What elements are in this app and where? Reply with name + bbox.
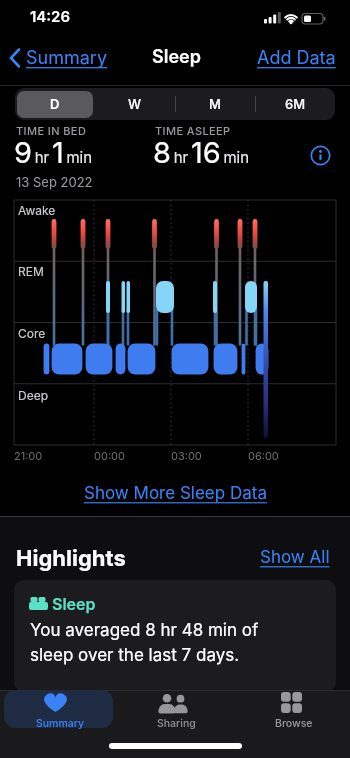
staticText: 6M (285, 96, 306, 112)
staticText: You averaged 8 hr 48 min of (30, 620, 259, 641)
staticText: Sharing (157, 717, 196, 730)
staticText: Highlights (16, 545, 126, 572)
button[interactable]: Summary (6, 44, 118, 74)
staticText: 03:00 (171, 449, 202, 462)
staticText: REM (18, 264, 44, 279)
staticText: TIME ASLEEP (155, 124, 231, 137)
staticText: 9 hr 1 min (14, 135, 93, 170)
button[interactable]: Sharing (120, 690, 230, 734)
staticText: 8 hr 16 min (153, 135, 250, 170)
button[interactable] (309, 144, 332, 167)
button[interactable]: Browse (236, 690, 346, 734)
staticText: Add Data (257, 47, 336, 69)
staticText: Summary (36, 717, 84, 730)
staticText: Core (18, 326, 46, 341)
staticText: Deep (18, 388, 48, 403)
staticText: 06:00 (248, 449, 279, 462)
staticText: 21:00 (14, 449, 43, 462)
staticText: 00:00 (94, 449, 125, 462)
staticText: W (128, 96, 142, 112)
staticText: D (50, 96, 60, 112)
button[interactable]: Add Data (257, 44, 343, 74)
staticText: 14:26 (30, 7, 71, 25)
staticText: sleep over the last 7 days. (30, 645, 240, 666)
button[interactable]: Show All (260, 547, 330, 568)
button[interactable]: Summary (4, 690, 113, 734)
staticText: Summary (26, 47, 108, 69)
button[interactable]: M (175, 88, 255, 120)
staticText: 13 Sep 2022 (16, 174, 93, 190)
staticText: Sleep (152, 46, 201, 68)
button[interactable]: W (95, 88, 175, 120)
staticText: M (209, 96, 221, 112)
button[interactable]: 6M (255, 88, 335, 120)
staticText: Sleep (52, 594, 96, 613)
button[interactable] (17, 91, 93, 118)
staticText: TIME IN BED (16, 124, 87, 137)
button[interactable]: D (15, 88, 95, 120)
button[interactable]: Sleep (14, 580, 336, 692)
staticText: Browse (275, 717, 313, 730)
button[interactable]: Show More Sleep Data (84, 483, 267, 504)
staticText: Awake (18, 203, 56, 218)
